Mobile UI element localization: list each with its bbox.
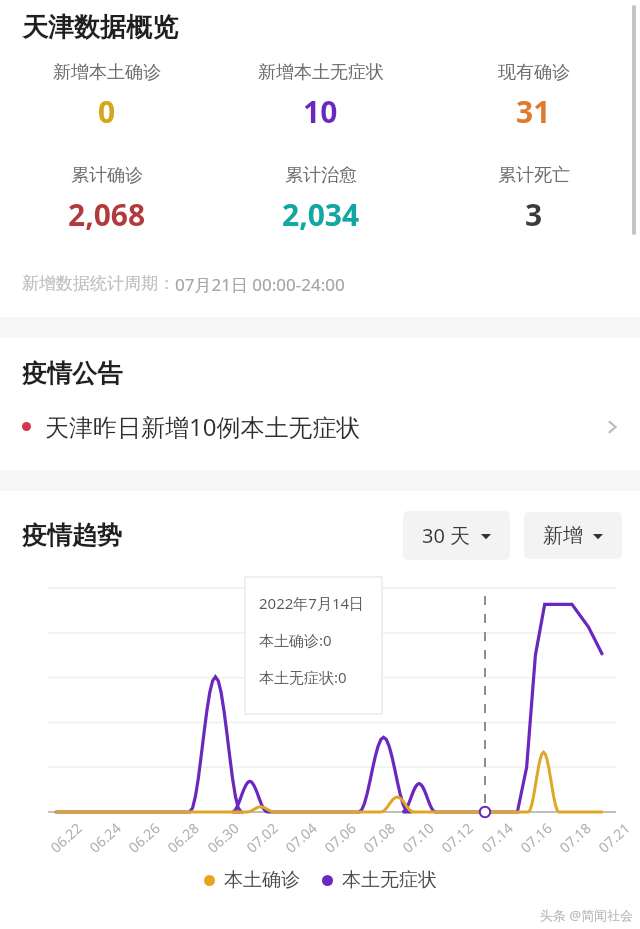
staticText: 07.02 (242, 818, 282, 857)
staticText: 疫情趋势 (22, 520, 122, 551)
staticText: 10 (303, 91, 338, 132)
staticText: 2,034 (282, 194, 360, 235)
button[interactable]: 累计死亡 (427, 164, 640, 235)
button[interactable]: 累计确诊 (0, 164, 214, 235)
staticText: 07.10 (398, 818, 438, 857)
staticText: 现有确诊 (498, 61, 570, 84)
staticText: 06.22 (46, 818, 86, 857)
button[interactable]: 累计治愈 (214, 164, 427, 235)
button[interactable]: 30 天 (403, 511, 510, 560)
staticText: 新增本土确诊 (53, 61, 161, 84)
staticText: 天津昨日新增10例本土无症状 (45, 410, 361, 443)
staticText: 07.08 (359, 818, 399, 857)
staticText: 3 (525, 194, 543, 235)
staticText: 天津数据概览 (22, 11, 178, 44)
staticText: 07.16 (516, 818, 556, 857)
staticText: 本土无症状:0 (259, 667, 347, 687)
staticText: 本土确诊 (224, 868, 300, 892)
staticText: 2022年7月14日 (259, 593, 365, 613)
staticText: 07.14 (477, 818, 517, 857)
staticText: 07.06 (320, 818, 360, 857)
staticText: 30 天 (422, 522, 471, 549)
button[interactable]: 新增本土无症状 (214, 61, 427, 132)
staticText: 06.24 (85, 818, 125, 857)
staticText: 新增本土无症状 (258, 61, 384, 84)
staticText: 07.18 (555, 818, 595, 857)
staticText: 06.28 (163, 818, 203, 857)
staticText: 0 (98, 91, 116, 132)
staticText: 累计治愈 (285, 164, 357, 187)
staticText: 疫情公告 (22, 358, 122, 389)
staticText: 07.21 (594, 818, 634, 857)
staticText: 累计死亡 (498, 164, 570, 187)
staticText: 新增 (543, 523, 583, 548)
staticText: 31 (516, 91, 551, 132)
staticText: 本土确诊:0 (259, 630, 332, 650)
staticText: 07月21日 00:00-24:00 (175, 273, 345, 296)
button[interactable]: 新增 (524, 512, 622, 559)
staticText: 新增数据统计周期： (22, 273, 175, 294)
staticText: 头条 @简闻社会 (540, 906, 634, 924)
staticText: 2,068 (68, 194, 146, 235)
staticText: 本土无症状 (342, 868, 437, 892)
button[interactable]: 天津昨日新增10例本土无症状 (0, 403, 640, 450)
other: 查看公告详情 (602, 417, 622, 437)
button[interactable]: 新增本土确诊 (0, 61, 214, 132)
staticText: 06.26 (124, 818, 164, 857)
button[interactable]: 现有确诊 (427, 61, 640, 132)
staticText: 07.04 (281, 818, 321, 857)
staticText: 累计确诊 (71, 164, 143, 187)
staticText: 07.12 (437, 818, 477, 857)
staticText: 06.30 (203, 818, 243, 857)
